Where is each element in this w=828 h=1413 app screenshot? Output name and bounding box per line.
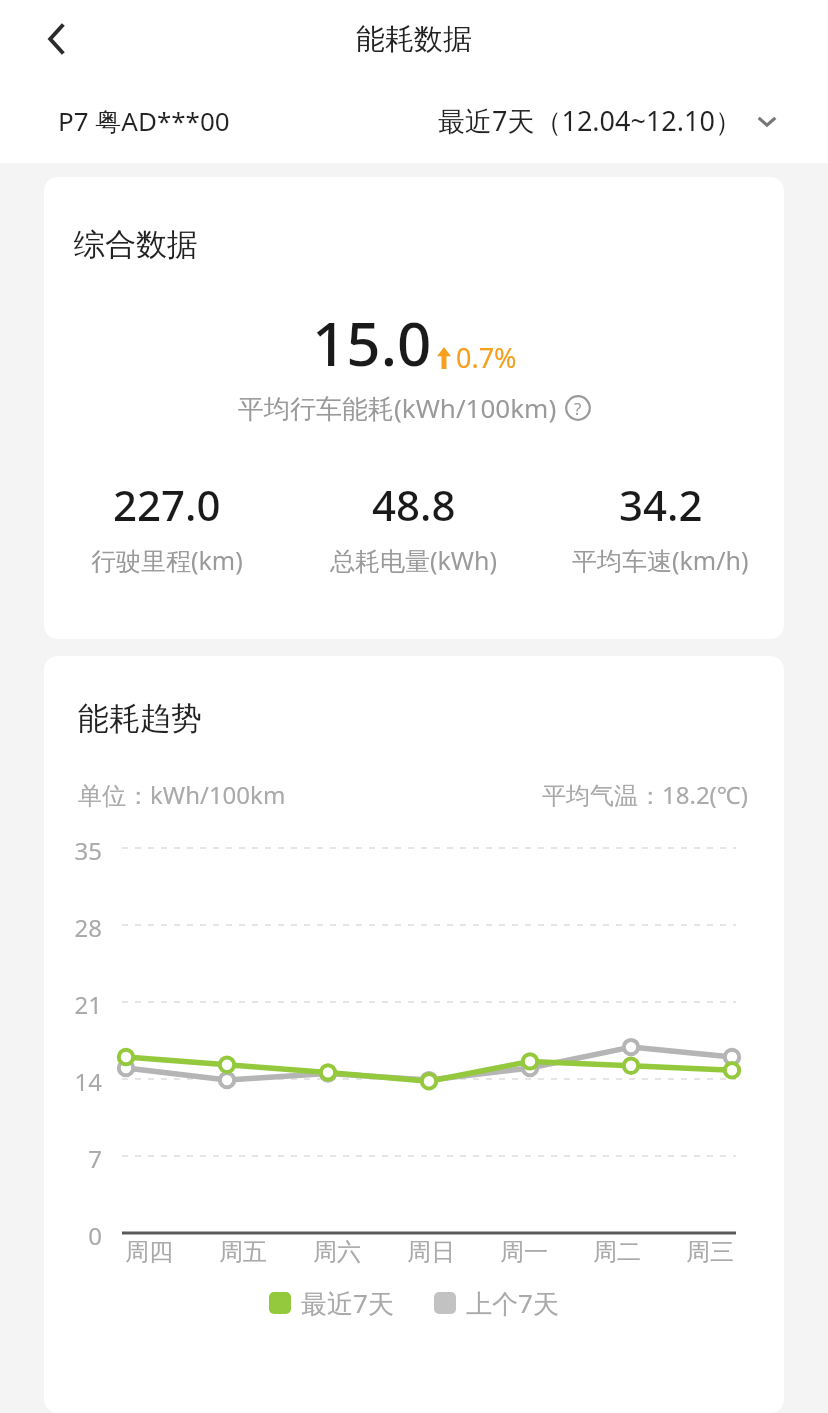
staticText: 能耗趋势 [78, 699, 202, 738]
staticText: 周六 [313, 1237, 361, 1267]
button[interactable]: Help [565, 395, 591, 421]
button[interactable]: 上个7天 [434, 1285, 559, 1321]
staticText: 35 [74, 834, 102, 867]
staticText: 7 [88, 1142, 102, 1175]
staticText: P7 粤AD***00 [58, 103, 230, 139]
button[interactable]: Back [30, 13, 82, 65]
staticText: 平均车速(km/h) [572, 543, 749, 577]
staticText: 行驶里程(km) [91, 543, 243, 577]
staticText: 227.0 [113, 476, 221, 533]
staticText: 0 [88, 1219, 102, 1252]
staticText: 周一 [500, 1237, 548, 1267]
staticText: ? [574, 397, 582, 420]
staticText: 上个7天 [466, 1285, 559, 1321]
staticText: 21 [74, 988, 102, 1021]
staticText: 周三 [686, 1237, 734, 1267]
button[interactable]: 最近7天 [269, 1285, 394, 1321]
staticText: 28 [74, 911, 102, 944]
staticText: 最近7天 [301, 1285, 394, 1321]
staticText: 0.7% [456, 339, 517, 376]
staticText: 周日 [407, 1237, 455, 1267]
button[interactable]: 最近7天（12.04~12.10） [438, 102, 780, 139]
staticText: 平均行车能耗(kWh/100km) [238, 390, 557, 426]
staticText: 能耗数据 [356, 21, 472, 58]
staticText: 综合数据 [74, 225, 198, 264]
staticText: 最近7天（12.04~12.10） [438, 102, 742, 139]
staticText: 总耗电量(kWh) [330, 543, 498, 577]
staticText: 周四 [125, 1237, 173, 1267]
staticText: 15.0 [312, 302, 432, 384]
staticText: 周二 [593, 1237, 641, 1267]
staticText: 34.2 [619, 476, 703, 533]
staticText: 14 [74, 1065, 102, 1098]
staticText: 周五 [219, 1237, 267, 1267]
staticText: 单位：kWh/100km [78, 778, 286, 811]
staticText: 48.8 [372, 476, 456, 533]
staticText: 平均气温：18.2(℃) [542, 778, 748, 811]
